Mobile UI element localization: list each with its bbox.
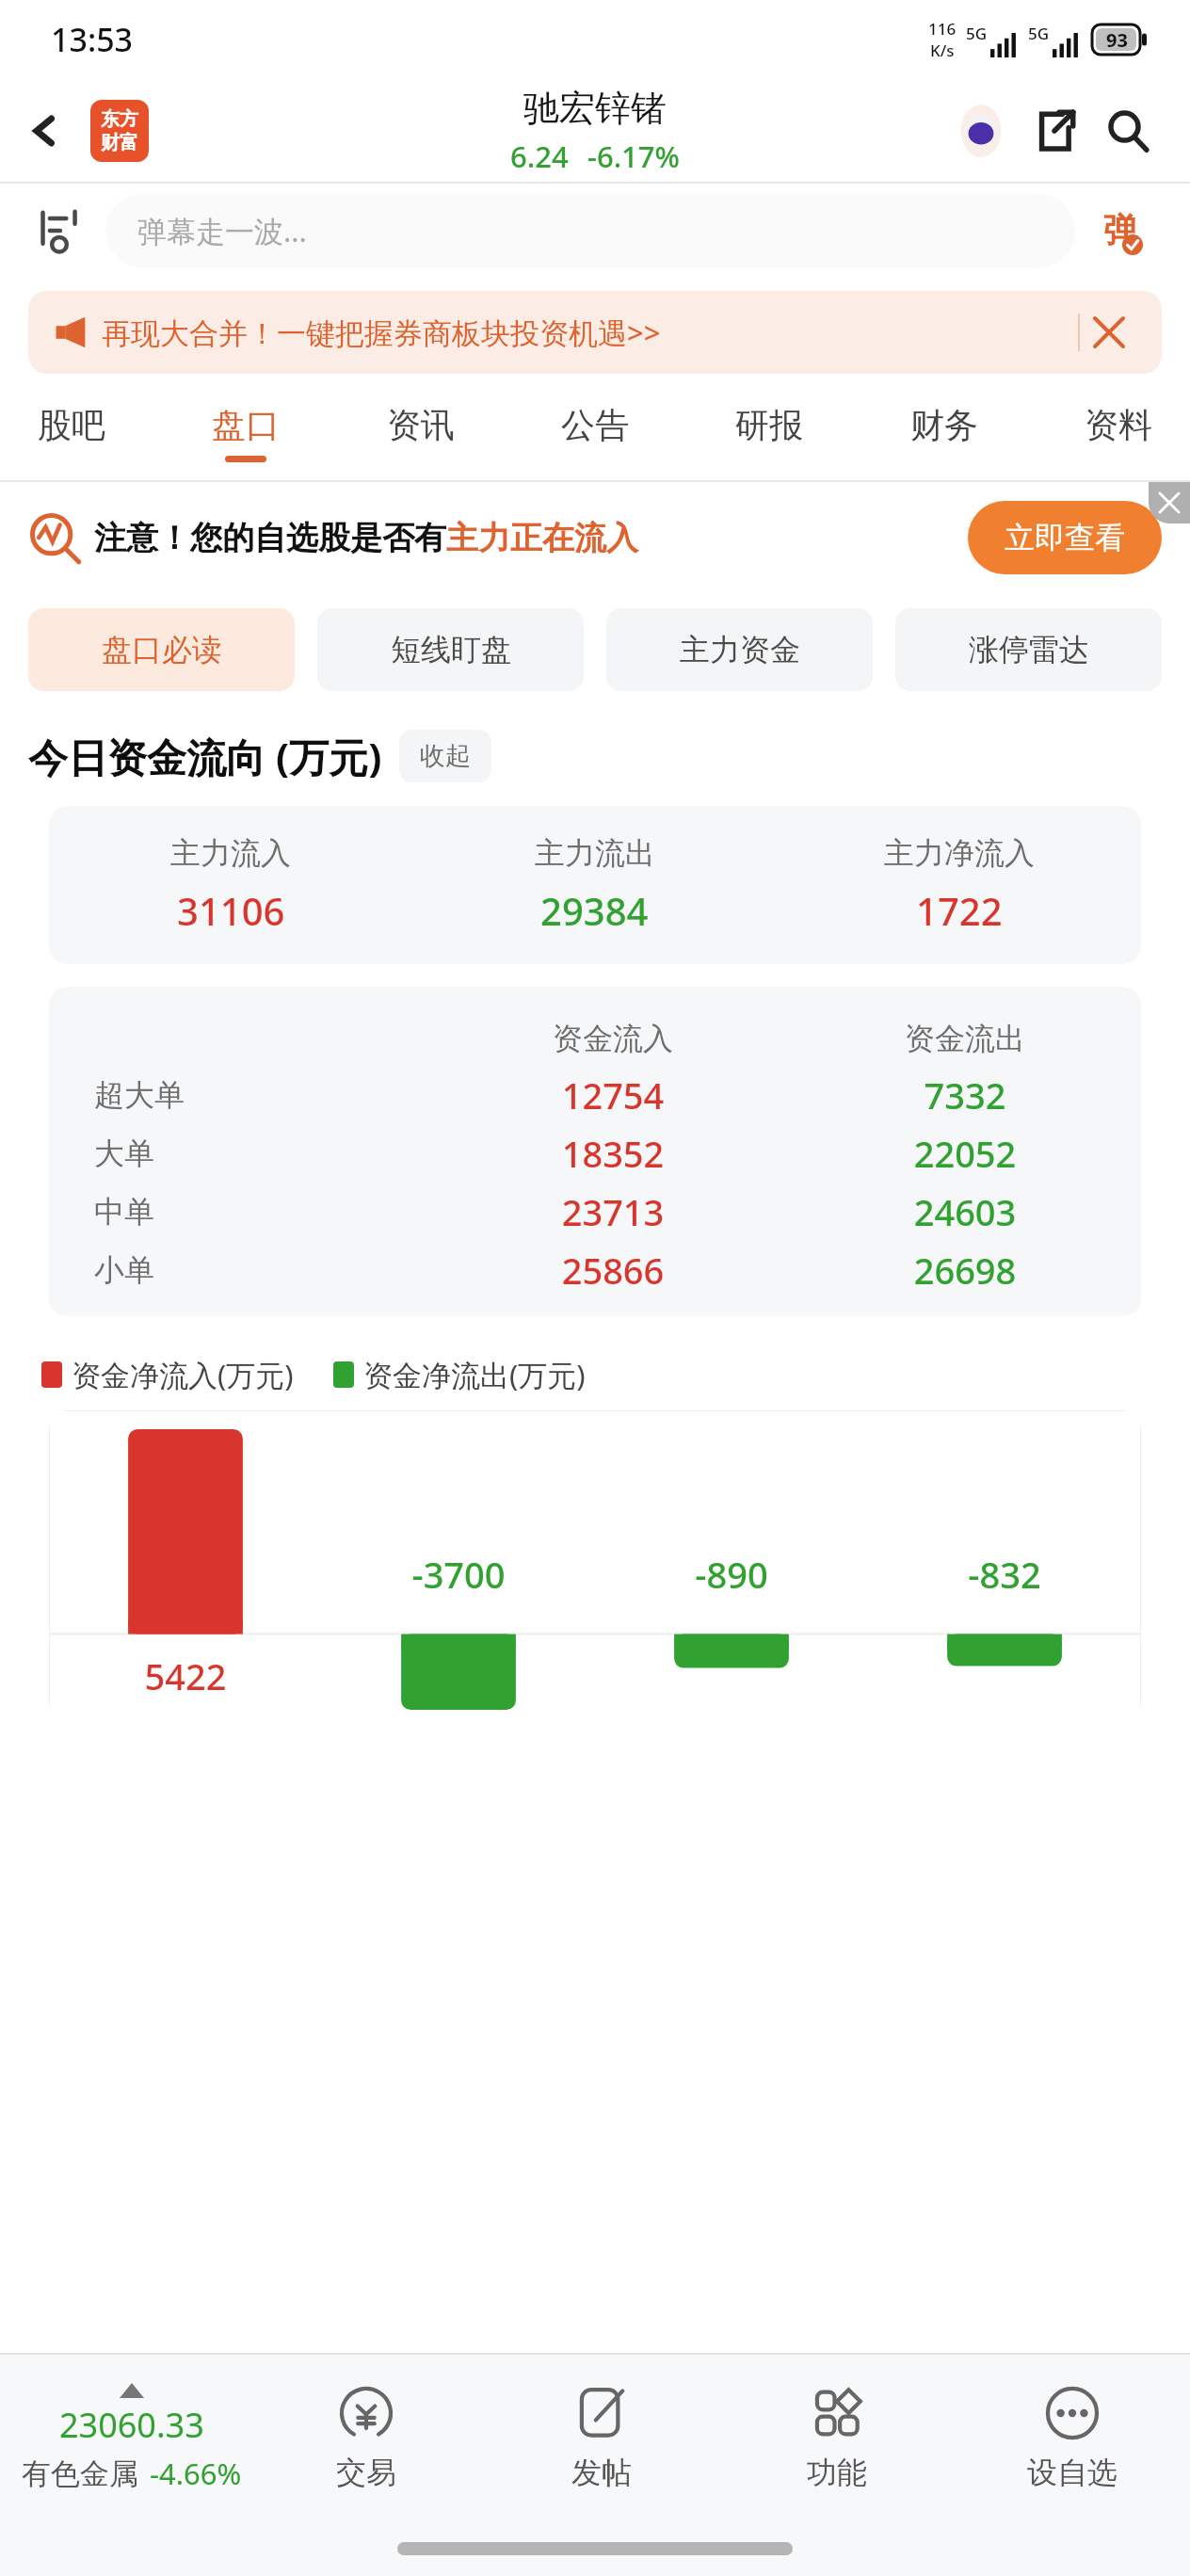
- staticText: 盘口: [212, 404, 280, 446]
- staticText: 再现大合并！一键把握券商板块投资机遇>>: [102, 313, 1079, 352]
- staticText: 研报: [735, 404, 803, 446]
- staticText: 今日资金流向 (万元): [28, 730, 382, 783]
- staticText: 发帖: [571, 2454, 632, 2491]
- staticText: 25866: [437, 1246, 789, 1295]
- staticText: 主力流出: [535, 834, 655, 872]
- staticText: 财富: [101, 131, 138, 154]
- button[interactable]: 设自选: [955, 2384, 1190, 2491]
- staticText: K/s: [930, 40, 955, 61]
- staticText: 资金净流出(万元): [363, 1355, 586, 1394]
- staticText: 交易: [336, 2454, 396, 2491]
- button[interactable]: AI assistant: [951, 101, 1011, 161]
- staticText: 驰宏锌锗: [523, 86, 667, 131]
- staticText: 超大单: [94, 1076, 437, 1114]
- staticText: 31106: [177, 885, 285, 936]
- button[interactable]: 23060.33: [0, 2383, 249, 2493]
- button[interactable]: 发帖: [484, 2384, 719, 2491]
- button[interactable]: 再现大合并！一键把握券商板块投资机遇>>: [28, 291, 1162, 374]
- staticText: 大单: [94, 1135, 437, 1172]
- staticText: 116: [928, 18, 957, 40]
- staticText: 弹: [1103, 209, 1137, 251]
- button[interactable]: 股吧: [26, 398, 117, 468]
- button[interactable]: Back: [21, 107, 68, 154]
- staticText: 1722: [916, 885, 1003, 936]
- button[interactable]: Share: [1024, 101, 1085, 161]
- button[interactable]: 主力资金: [606, 608, 873, 691]
- staticText: 13:53: [51, 18, 134, 61]
- staticText: -6.17%: [587, 137, 680, 176]
- staticText: -890: [595, 1550, 868, 1599]
- button[interactable]: Danmaku on: [1075, 190, 1166, 270]
- button[interactable]: Search: [1098, 101, 1158, 161]
- button[interactable]: 资讯: [376, 398, 466, 468]
- staticText: 22052: [789, 1129, 1141, 1178]
- staticText: 主力净流入: [884, 834, 1035, 872]
- button[interactable]: 研报: [724, 398, 814, 468]
- staticText: 主力正在流入: [446, 518, 638, 558]
- button[interactable]: 公告: [550, 398, 640, 468]
- staticText: 财务: [910, 404, 978, 446]
- button[interactable]: Danmaku settings: [24, 196, 94, 266]
- staticText: 93: [1106, 27, 1128, 53]
- staticText: 中单: [94, 1193, 437, 1231]
- staticText: 6.24: [510, 137, 569, 176]
- staticText: 小单: [94, 1251, 437, 1289]
- staticText: 29384: [540, 885, 649, 936]
- staticText: 23060.33: [59, 2402, 204, 2448]
- staticText: 5422: [49, 1651, 322, 1700]
- staticText: 主力流入: [170, 834, 291, 872]
- staticText: 24603: [789, 1187, 1141, 1236]
- staticText: 7332: [789, 1071, 1141, 1119]
- staticText: 短线盯盘: [391, 631, 511, 668]
- staticText: 弹幕走一波...: [137, 211, 307, 250]
- staticText: 资讯: [387, 404, 455, 446]
- staticText: 主力资金: [680, 631, 800, 668]
- staticText: 收起: [420, 740, 471, 772]
- staticText: 股吧: [38, 404, 105, 446]
- button[interactable]: 弹幕走一波...: [105, 194, 1075, 267]
- staticText: 立即查看: [1005, 519, 1125, 556]
- button[interactable]: 资料: [1073, 398, 1164, 468]
- staticText: 5G: [1028, 23, 1050, 44]
- button[interactable]: 盘口必读: [28, 608, 295, 691]
- staticText: 东方: [101, 107, 138, 131]
- button[interactable]: 收起: [399, 730, 491, 782]
- staticText: 23713: [437, 1187, 789, 1236]
- staticText: 盘口必读: [102, 631, 222, 668]
- staticText: 涨停雷达: [969, 631, 1089, 668]
- staticText: 资金流出: [789, 1020, 1141, 1057]
- button[interactable]: 涨停雷达: [895, 608, 1162, 691]
- staticText: 资金净流入(万元): [72, 1355, 294, 1394]
- staticText: 公告: [561, 404, 629, 446]
- button[interactable]: 立即查看: [968, 501, 1162, 574]
- button[interactable]: 功能: [719, 2384, 955, 2491]
- staticText: 有色金属: [22, 2455, 138, 2492]
- staticText: 资金流入: [437, 1020, 789, 1057]
- staticText: 注意！您的自选股是否有: [94, 518, 446, 558]
- staticText: 资料: [1085, 404, 1152, 446]
- button[interactable]: 短线盯盘: [317, 608, 584, 691]
- staticText: -4.66%: [150, 2454, 242, 2493]
- button[interactable]: Close: [1149, 482, 1190, 523]
- staticText: -3700: [322, 1550, 595, 1599]
- staticText: 5G: [966, 23, 988, 44]
- staticText: 功能: [807, 2454, 867, 2491]
- staticText: 26698: [789, 1246, 1141, 1295]
- button[interactable]: 财务: [899, 398, 989, 468]
- button[interactable]: Close banner: [1081, 291, 1137, 374]
- staticText: 18352: [437, 1129, 789, 1178]
- button[interactable]: 盘口: [201, 398, 291, 468]
- button[interactable]: East Money: [90, 100, 149, 162]
- staticText: -832: [868, 1550, 1141, 1599]
- staticText: 设自选: [1027, 2454, 1118, 2491]
- button[interactable]: 交易: [249, 2384, 484, 2491]
- staticText: 12754: [437, 1071, 789, 1119]
